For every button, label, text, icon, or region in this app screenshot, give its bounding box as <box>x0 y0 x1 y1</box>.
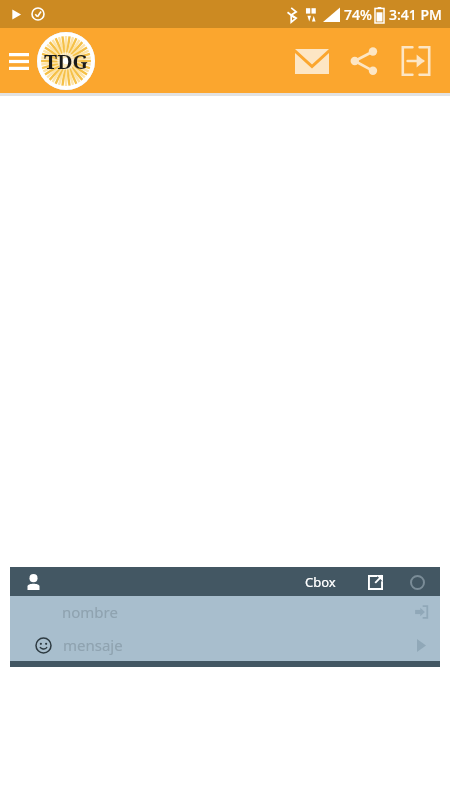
other: Emoji <box>32 634 54 656</box>
button[interactable]: Share <box>338 35 390 87</box>
button[interactable]: Open in new window <box>362 569 388 595</box>
staticText: Cbox <box>305 573 336 591</box>
button[interactable]: Cbox <box>301 573 340 591</box>
button[interactable]: Emoji <box>10 628 440 661</box>
staticText: TDG <box>44 48 88 75</box>
button[interactable]: nombre <box>10 596 440 628</box>
staticText: nombre <box>62 602 118 622</box>
button[interactable]: Messages <box>286 35 338 87</box>
button[interactable]: Log out <box>390 35 442 87</box>
button[interactable]: Account <box>20 569 46 595</box>
staticText: 3:41 PM <box>389 5 442 24</box>
button[interactable]: TDG logo <box>35 30 97 92</box>
staticText: 74% <box>344 5 372 24</box>
button[interactable]: Status <box>404 569 430 595</box>
other: Log in <box>406 597 436 627</box>
staticText: mensaje <box>63 635 123 655</box>
button[interactable]: Menu <box>2 44 36 78</box>
other: Send <box>406 630 436 660</box>
